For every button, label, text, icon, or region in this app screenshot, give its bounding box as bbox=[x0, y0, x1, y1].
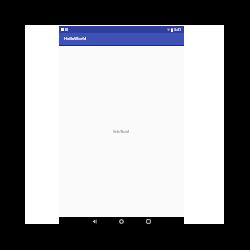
button[interactable]: Home bbox=[108, 217, 135, 225]
staticText: HelloWorld bbox=[64, 36, 87, 42]
button[interactable]: Back bbox=[81, 217, 108, 225]
button[interactable]: Recents bbox=[135, 217, 162, 225]
staticText: Hello World! bbox=[113, 130, 130, 134]
staticText: 3:41 bbox=[174, 27, 182, 32]
